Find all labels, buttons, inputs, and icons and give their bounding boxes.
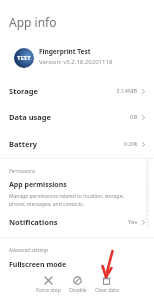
button[interactable]: Data usage [0, 108, 154, 126]
staticText: 3.14MB [116, 87, 138, 95]
staticText: Data usage [9, 112, 52, 122]
button[interactable]: Force stop [34, 275, 63, 294]
button[interactable]: Fullscreen mode [0, 257, 154, 273]
button[interactable]: Notifications [0, 213, 154, 231]
staticText: Clear data [95, 287, 119, 294]
staticText: App info [9, 14, 57, 30]
staticText: Battery [9, 139, 38, 149]
button[interactable]: Battery [0, 135, 154, 153]
other: Disable [73, 276, 82, 285]
staticText: Yes [128, 218, 138, 226]
button[interactable]: Clear data [92, 275, 121, 294]
staticText: phone, messages, and contacts. [9, 201, 85, 208]
staticText: Version: v5.2.18.20201118 [39, 58, 113, 66]
staticText: 0.0% [124, 140, 138, 148]
staticText: 0B [130, 113, 138, 121]
other: Clear data [102, 276, 111, 285]
button[interactable]: Disable [63, 275, 92, 294]
button[interactable]: App permissions [0, 178, 154, 208]
other: Force stop [44, 276, 53, 285]
staticText: Advanced settings [9, 247, 49, 253]
staticText: Notifications [9, 217, 58, 227]
staticText: Disable [69, 287, 87, 294]
staticText: Fingerprint Test [39, 47, 91, 56]
staticText: Force stop [36, 287, 61, 294]
staticText: Storage [9, 86, 38, 96]
button[interactable]: Storage [0, 82, 154, 100]
staticText: Fullscreen mode [9, 260, 67, 270]
button[interactable]: App info [0, 0, 154, 38]
staticText: App permissions [9, 180, 67, 190]
staticText: cheapbudgetphone.com [144, 158, 152, 228]
staticText: Permissions [9, 168, 36, 174]
staticText: Manage permissions related to location, … [9, 193, 124, 200]
staticText: TEST [17, 54, 31, 62]
